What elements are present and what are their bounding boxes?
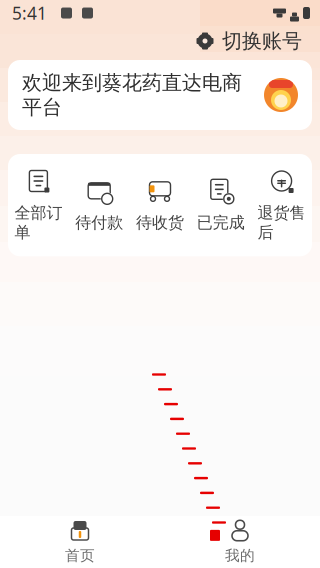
staticText: 退货售后: [258, 203, 306, 242]
staticText: 待收货: [136, 213, 184, 232]
staticText: 切换账号: [222, 29, 302, 53]
staticText: 首页: [65, 546, 95, 564]
button[interactable]: 待付款: [69, 178, 130, 232]
staticText: 全部订单: [14, 203, 62, 242]
button[interactable]: 我的: [160, 513, 320, 568]
button[interactable]: 待收货: [130, 178, 190, 232]
staticText: 5:41: [12, 1, 47, 24]
staticText: 我的: [225, 546, 255, 564]
staticText: 已完成: [197, 213, 245, 232]
button[interactable]: 切换账号: [190, 25, 308, 57]
staticText: 待付款: [75, 213, 123, 232]
button[interactable]: 退货售后: [251, 168, 312, 242]
button[interactable]: 已完成: [190, 178, 251, 232]
button[interactable]: 首页: [0, 513, 160, 568]
button[interactable]: 全部订单: [8, 168, 69, 242]
staticText: 欢迎来到葵花药直达电商平台: [22, 70, 242, 119]
